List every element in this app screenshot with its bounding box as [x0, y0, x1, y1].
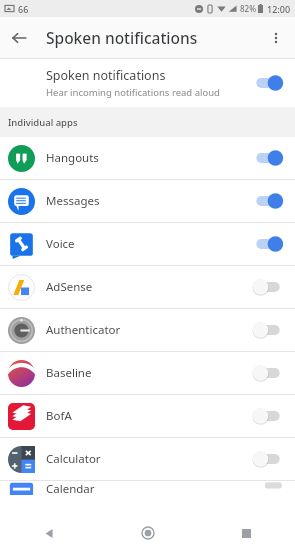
button[interactable]: Hangouts [0, 137, 295, 179]
button[interactable]: Calendar [0, 481, 295, 500]
button[interactable]: Off [253, 446, 283, 472]
staticText: 66 [18, 3, 29, 15]
button[interactable]: Messages [0, 180, 295, 222]
button[interactable]: Off [253, 360, 283, 386]
staticText: Authenticator [46, 322, 253, 338]
button[interactable]: Voice [0, 223, 295, 265]
button[interactable]: On [253, 145, 283, 171]
staticText: Messages [46, 193, 253, 209]
button[interactable]: BofA [0, 395, 295, 437]
button[interactable]: On [253, 70, 283, 96]
button[interactable]: Off [253, 274, 283, 300]
button[interactable]: Authenticator [0, 309, 295, 351]
staticText: Baseline [46, 365, 253, 381]
button[interactable]: On [253, 188, 283, 214]
staticText: Calculator [46, 451, 253, 467]
button[interactable]: More options [257, 19, 295, 57]
staticText: Hangouts [46, 150, 253, 166]
button[interactable]: Spoken notifications [0, 59, 295, 107]
button[interactable]: Calculator [0, 438, 295, 480]
staticText: 12:00 [267, 3, 291, 15]
button[interactable]: Baseline [0, 352, 295, 394]
staticText: BofA [46, 408, 253, 424]
button[interactable]: Home [99, 517, 197, 549]
button[interactable]: Back [0, 19, 38, 57]
staticText: 82% [240, 3, 256, 14]
button[interactable]: Off [253, 317, 283, 343]
staticText: Voice [46, 236, 253, 252]
button[interactable]: Off [253, 403, 283, 429]
staticText: Calendar [46, 481, 95, 497]
button[interactable]: AdSense [0, 266, 295, 308]
button[interactable]: On [253, 231, 283, 257]
button[interactable]: Recent apps [197, 517, 295, 549]
staticText: Spoken notifications [46, 27, 198, 48]
staticText: AdSense [46, 279, 253, 295]
button[interactable]: Back [0, 517, 99, 549]
staticText: Individual apps [8, 116, 78, 129]
staticText: Spoken notifications [46, 67, 166, 84]
staticText: Hear incoming notifications read aloud [46, 86, 220, 99]
